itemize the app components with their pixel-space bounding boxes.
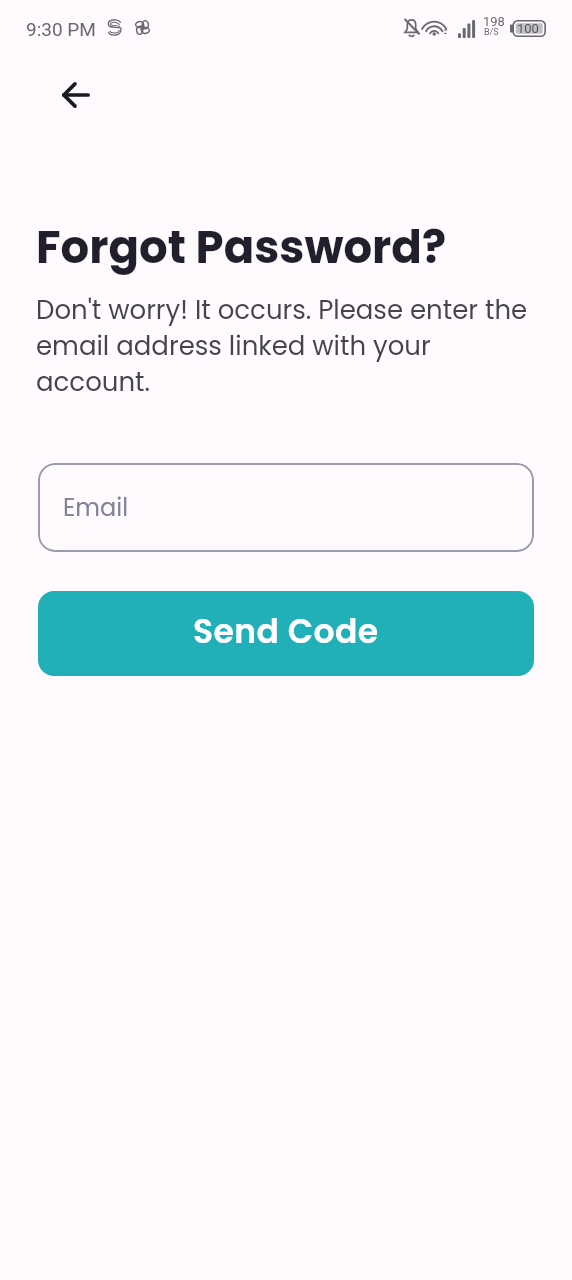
button[interactable]: Back	[52, 71, 100, 119]
button[interactable]: Email	[38, 463, 534, 552]
button[interactable]: Send Code	[38, 591, 534, 676]
staticText: Don't worry! It occurs. Please enter the…	[36, 292, 536, 400]
staticText: 100	[517, 21, 539, 36]
staticText: Send Code	[193, 608, 379, 654]
staticText: Email	[63, 491, 129, 525]
staticText: 9:30 PM	[26, 18, 96, 40]
staticText: Forgot Password?	[36, 216, 447, 279]
staticText: 198	[483, 14, 505, 29]
staticText: B/S	[484, 27, 499, 38]
